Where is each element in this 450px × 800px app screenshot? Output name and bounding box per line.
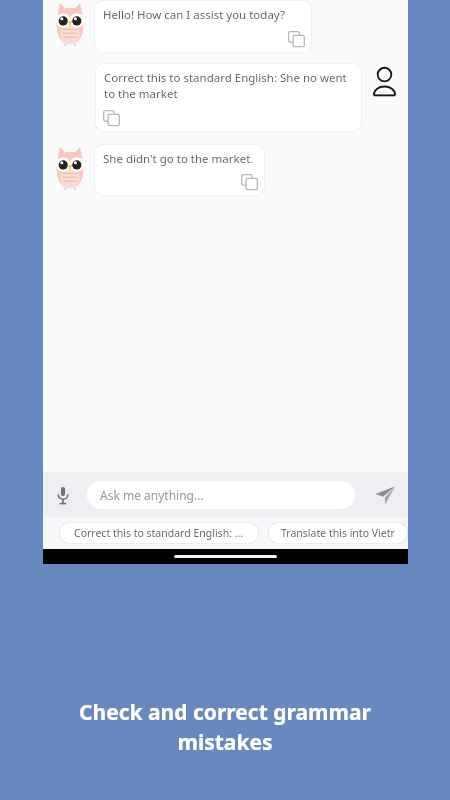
button[interactable]: Voice input: [55, 485, 71, 505]
button[interactable]: Copy: [288, 31, 305, 48]
staticText: Translate this into Vietr: [281, 526, 395, 540]
staticText: Correct this to standard English: ...: [74, 526, 244, 540]
button[interactable]: She didn't go to the market.: [94, 144, 265, 196]
staticText: Correct this to standard English: She no…: [104, 70, 353, 101]
button[interactable]: Ask me anything...: [87, 481, 355, 509]
staticText: Check and correct grammar mistakes: [24, 698, 426, 756]
staticText: She didn't go to the market.: [103, 151, 254, 167]
button[interactable]: Correct this to standard English: ...: [59, 522, 259, 544]
other: User: [370, 65, 399, 98]
button[interactable]: Send: [374, 484, 396, 506]
button[interactable]: Translate this into Vietr: [268, 522, 408, 544]
button[interactable]: Copy: [241, 174, 258, 191]
button[interactable]: Copy: [103, 110, 120, 127]
button[interactable]: Correct this to standard English: She no…: [95, 63, 362, 132]
staticText: Ask me anything...: [100, 487, 204, 503]
staticText: Hello! How can I assist you today?: [103, 7, 285, 23]
button[interactable]: Hello! How can I assist you today?: [94, 0, 312, 53]
